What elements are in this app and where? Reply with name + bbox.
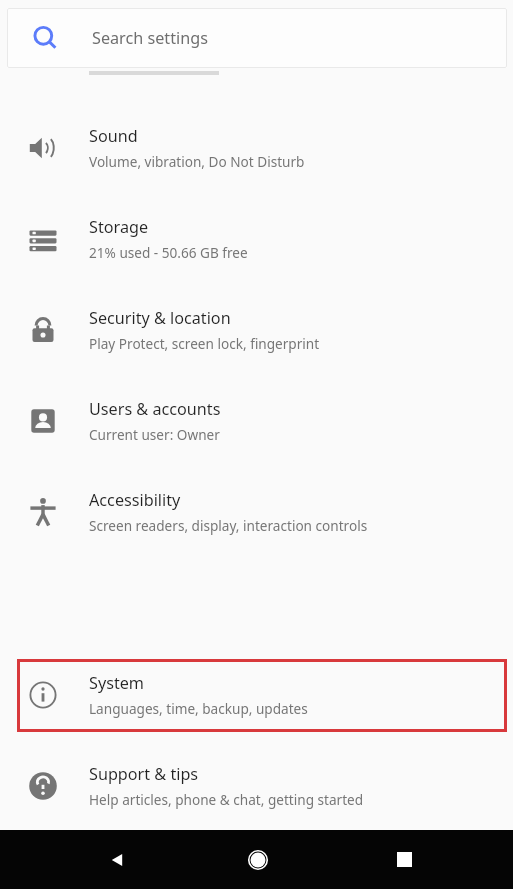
button[interactable]: Users & accounts <box>0 377 513 465</box>
staticText: Languages, time, backup, updates <box>89 699 308 718</box>
staticText: Help articles, phone & chat, getting sta… <box>89 790 364 809</box>
staticText: Support & tips <box>89 763 199 785</box>
staticText: Sound <box>89 125 138 147</box>
button[interactable]: Support & tips <box>0 742 513 830</box>
staticText: Play Protect, screen lock, fingerprint <box>89 334 320 353</box>
staticText: Storage <box>89 216 149 238</box>
staticText: 21% used - 50.66 GB free <box>89 243 248 262</box>
button[interactable]: System <box>0 651 513 739</box>
staticText: System <box>89 672 145 694</box>
staticText: Users & accounts <box>89 398 221 420</box>
staticText: Search settings <box>92 27 208 49</box>
staticText: Security & location <box>89 307 231 329</box>
button[interactable]: Security & location <box>0 286 513 374</box>
button[interactable]: Recent apps <box>382 830 426 889</box>
button[interactable]: Home <box>236 830 280 889</box>
staticText: Current user: Owner <box>89 425 220 444</box>
staticText: Screen readers, display, interaction con… <box>89 516 368 535</box>
staticText: Volume, vibration, Do Not Disturb <box>89 152 305 171</box>
button[interactable]: Search settings <box>7 8 507 68</box>
button[interactable]: Accessibility <box>0 468 513 556</box>
button[interactable]: Sound <box>0 104 513 192</box>
staticText: Accessibility <box>89 489 181 511</box>
button[interactable]: Storage <box>0 195 513 283</box>
button[interactable]: Back <box>95 830 139 889</box>
